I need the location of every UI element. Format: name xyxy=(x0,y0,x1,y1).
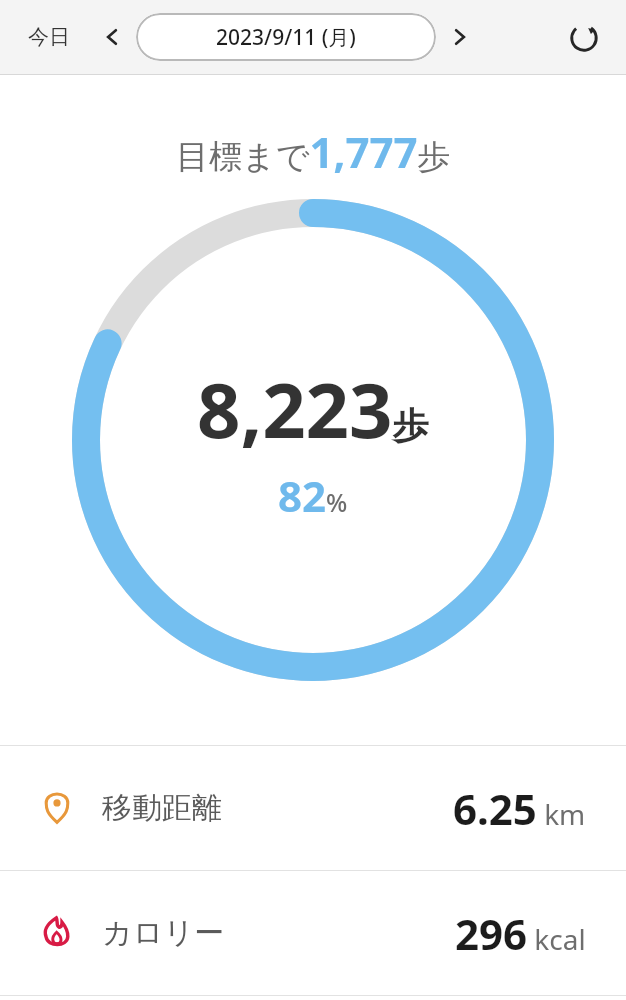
staticText: 6.25 km xyxy=(453,780,586,837)
staticText: カロリー xyxy=(102,914,225,952)
other: Distance xyxy=(38,789,76,827)
staticText: 目標まで1,777歩 xyxy=(176,123,451,180)
button[interactable]: Distance xyxy=(0,746,626,870)
button[interactable]: Calories xyxy=(0,871,626,995)
button[interactable]: 今日 xyxy=(20,18,78,56)
staticText: 82% xyxy=(278,467,348,524)
staticText: 今日 xyxy=(28,24,70,50)
button[interactable]: Previous day xyxy=(92,17,132,57)
button[interactable]: Next day xyxy=(440,17,480,57)
button[interactable]: Refresh xyxy=(560,13,608,61)
staticText: 296 kcal xyxy=(455,905,586,962)
staticText: 移動距離 xyxy=(102,789,222,827)
other: Calories xyxy=(38,914,76,952)
button[interactable]: 2023/9/11 (月) xyxy=(136,13,436,61)
staticText: 2023/9/11 (月) xyxy=(216,23,356,52)
staticText: 8,223歩 xyxy=(197,357,429,461)
